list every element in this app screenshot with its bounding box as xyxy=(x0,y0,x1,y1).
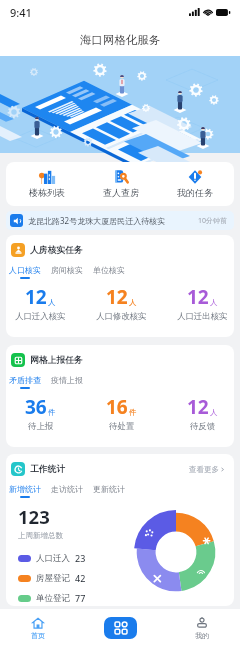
button[interactable]: 走访统计 xyxy=(46,484,88,498)
staticText: 36 xyxy=(25,394,47,420)
button[interactable]: 房间核实 xyxy=(46,265,88,279)
staticText: 人 xyxy=(48,298,56,307)
staticText: 12 xyxy=(187,394,209,420)
button[interactable]: 我的 xyxy=(187,615,217,642)
staticText: 人口核实 xyxy=(9,265,41,275)
staticText: 疫情上报 xyxy=(51,375,83,385)
button[interactable]: 单位核实 xyxy=(88,265,130,279)
staticText: 人房核实任务 xyxy=(30,245,83,256)
staticText: 10分钟前 xyxy=(198,216,228,226)
staticText: 单位登记 xyxy=(36,593,70,604)
staticText: 更新统计 xyxy=(93,484,125,494)
staticText: 人口修改核实 xyxy=(96,311,147,322)
button[interactable]: 矛盾排查 xyxy=(6,375,46,389)
button[interactable]: 新增统计 xyxy=(6,484,46,498)
staticText: 42 xyxy=(75,572,86,584)
button[interactable]: 龙昆北路32号龙珠大厦居民迁入待核实 xyxy=(6,211,234,230)
staticText: 矛盾排查 xyxy=(9,375,41,385)
staticText: 人 xyxy=(210,408,218,417)
staticText: 网格上报任务 xyxy=(30,355,83,366)
staticText: 龙昆北路32号龙珠大厦居民迁入待核实 xyxy=(28,215,198,226)
staticText: 上周新增总数 xyxy=(18,531,63,540)
staticText: 123 xyxy=(18,504,50,529)
staticText: 人口迁入核实 xyxy=(15,311,66,322)
staticText: 单位核实 xyxy=(93,265,125,275)
staticText: 9:41 xyxy=(10,5,32,20)
staticText: 件 xyxy=(129,408,137,417)
button[interactable]: 楼栋列表 xyxy=(10,162,84,206)
button[interactable]: 应用 xyxy=(104,617,137,639)
staticText: 查看更多 xyxy=(189,465,219,474)
staticText: 走访统计 xyxy=(51,484,83,494)
staticText: 人口迁出核实 xyxy=(177,311,228,322)
button[interactable]: 首页 xyxy=(23,615,53,642)
button[interactable]: 查人查房 xyxy=(84,162,158,206)
staticText: 23 xyxy=(75,552,86,564)
staticText: 12 xyxy=(106,284,128,310)
staticText: 待上报 xyxy=(28,421,54,432)
staticText: 12 xyxy=(187,284,209,310)
staticText: 房屋登记 xyxy=(36,573,70,584)
staticText: 楼栋列表 xyxy=(29,187,65,198)
button[interactable]: 我的任务 xyxy=(158,162,232,206)
staticText: 房间核实 xyxy=(51,265,83,275)
staticText: 我的任务 xyxy=(177,187,213,198)
staticText: 新增统计 xyxy=(9,484,41,494)
staticText: 工作统计 xyxy=(30,464,66,475)
staticText: 我的 xyxy=(195,631,209,640)
staticText: 人 xyxy=(210,298,218,307)
button[interactable]: 疫情上报 xyxy=(46,375,88,389)
staticText: 首页 xyxy=(31,631,45,640)
staticText: 人 xyxy=(129,298,137,307)
button[interactable]: 人口核实 xyxy=(6,265,46,279)
button[interactable]: 查看更多 xyxy=(187,463,227,476)
staticText: 海口网格化服务 xyxy=(80,33,161,47)
staticText: 16 xyxy=(106,394,128,420)
staticText: 12 xyxy=(25,284,47,310)
staticText: 77 xyxy=(75,592,86,604)
staticText: 待反馈 xyxy=(190,421,216,432)
button[interactable]: 更新统计 xyxy=(88,484,130,498)
staticText: 件 xyxy=(48,408,56,417)
staticText: 查人查房 xyxy=(103,187,139,198)
staticText: 待处置 xyxy=(109,421,135,432)
staticText: 人口迁入 xyxy=(36,553,70,564)
